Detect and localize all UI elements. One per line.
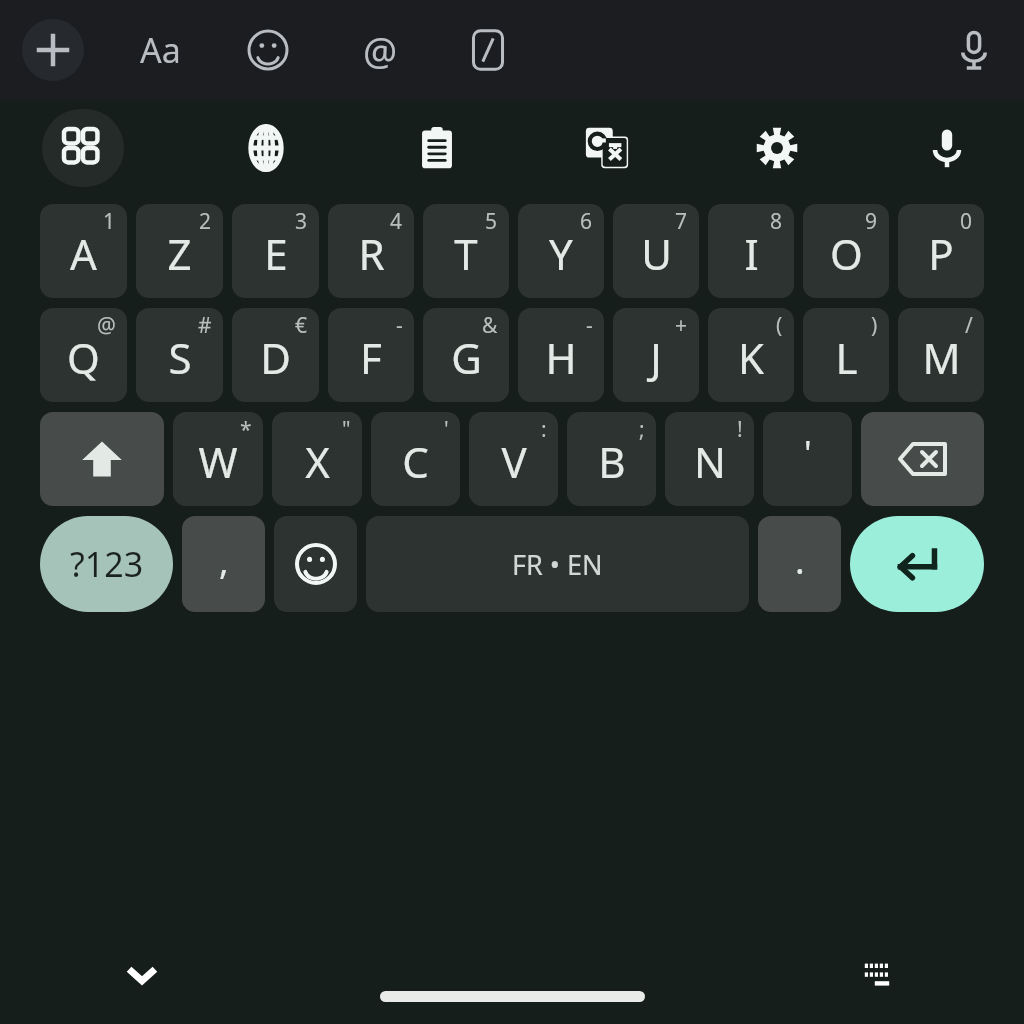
button[interactable]: Voice input: [946, 22, 1002, 78]
staticText: ?123: [70, 541, 144, 587]
button[interactable]: FR • EN: [366, 516, 749, 612]
button[interactable]: Enter: [850, 516, 984, 612]
staticText: 7: [675, 207, 688, 236]
staticText: @: [363, 24, 398, 76]
button[interactable]: Text formatting: [132, 22, 188, 78]
staticText: F: [360, 329, 382, 386]
staticText: Y: [549, 225, 573, 282]
button[interactable]: N: [665, 412, 754, 506]
staticText: €: [295, 311, 308, 340]
button[interactable]: M: [898, 308, 984, 402]
staticText: -: [586, 311, 593, 340]
button[interactable]: Translate: [578, 119, 636, 177]
staticText: 6: [580, 207, 593, 236]
button[interactable]: H: [518, 308, 604, 402]
button[interactable]: Voice typing: [918, 119, 976, 177]
button[interactable]: G: [423, 308, 509, 402]
staticText: T: [454, 225, 478, 282]
staticText: A: [70, 225, 97, 282]
staticText: X: [305, 433, 330, 490]
button[interactable]: R: [328, 204, 414, 298]
staticText: V: [501, 433, 527, 490]
staticText: 4: [390, 207, 403, 236]
staticText: P: [928, 225, 954, 282]
button[interactable]: Slash command: [460, 22, 516, 78]
button[interactable]: Emoji: [274, 516, 357, 612]
button[interactable]: Q: [40, 308, 127, 402]
staticText: .: [795, 536, 805, 585]
staticText: ': [444, 415, 449, 444]
staticText: B: [598, 433, 626, 490]
staticText: 3: [295, 207, 308, 236]
staticText: *: [240, 415, 252, 444]
button[interactable]: P: [898, 204, 984, 298]
button[interactable]: Switch keyboard: [850, 942, 914, 1006]
staticText: FR • EN: [512, 546, 603, 583]
staticText: N: [694, 433, 726, 490]
staticText: C: [402, 433, 429, 490]
staticText: 0: [960, 207, 973, 236]
staticText: 5: [485, 207, 498, 236]
staticText: U: [641, 225, 672, 282]
staticText: !: [737, 415, 743, 444]
staticText: J: [650, 329, 662, 386]
staticText: (: [776, 311, 783, 340]
button[interactable]: Toolbox: [42, 109, 124, 187]
staticText: #: [198, 311, 212, 340]
button[interactable]: Z: [136, 204, 223, 298]
button[interactable]: Settings: [748, 119, 806, 177]
button[interactable]: F: [328, 308, 414, 402]
button[interactable]: C: [371, 412, 460, 506]
button[interactable]: .: [758, 516, 841, 612]
button[interactable]: A: [40, 204, 127, 298]
staticText: 9: [865, 207, 878, 236]
staticText: M: [922, 329, 961, 386]
button[interactable]: J: [613, 308, 699, 402]
button[interactable]: Mention: [352, 22, 408, 78]
staticText: -: [396, 311, 403, 340]
button[interactable]: V: [469, 412, 558, 506]
button[interactable]: Add: [22, 19, 84, 81]
button[interactable]: ,: [182, 516, 265, 612]
button[interactable]: Emoji: [240, 22, 296, 78]
staticText: D: [260, 329, 291, 386]
button[interactable]: Clipboard: [408, 119, 466, 177]
button[interactable]: K: [708, 308, 794, 402]
staticText: G: [451, 329, 482, 386]
button[interactable]: U: [613, 204, 699, 298]
button[interactable]: Hide keyboard: [110, 942, 174, 1006]
button[interactable]: Shift: [40, 412, 164, 506]
button[interactable]: L: [803, 308, 889, 402]
staticText: Q: [67, 329, 100, 386]
button[interactable]: I: [708, 204, 794, 298]
staticText: 1: [103, 207, 116, 236]
staticText: @: [97, 311, 116, 340]
staticText: S: [168, 329, 192, 386]
button[interactable]: S: [136, 308, 223, 402]
staticText: L: [835, 329, 858, 386]
staticText: O: [830, 225, 863, 282]
button[interactable]: T: [423, 204, 509, 298]
staticText: I: [744, 225, 759, 282]
staticText: R: [358, 225, 385, 282]
button[interactable]: ?123: [40, 516, 173, 612]
staticText: ': [804, 430, 812, 476]
button[interactable]: B: [567, 412, 656, 506]
staticText: +: [675, 311, 688, 340]
button[interactable]: E: [232, 204, 319, 298]
staticText: &: [482, 311, 498, 340]
staticText: /: [965, 311, 973, 340]
staticText: Aa: [140, 27, 181, 73]
button[interactable]: Languages: [237, 119, 295, 177]
staticText: ): [871, 311, 878, 340]
button[interactable]: W: [173, 412, 263, 506]
staticText: :: [541, 415, 547, 444]
button[interactable]: O: [803, 204, 889, 298]
button[interactable]: X: [272, 412, 362, 506]
button[interactable]: D: [232, 308, 319, 402]
button[interactable]: Backspace: [861, 412, 984, 506]
button[interactable]: Y: [518, 204, 604, 298]
staticText: 8: [770, 207, 783, 236]
staticText: E: [264, 225, 288, 282]
button[interactable]: ': [763, 412, 852, 506]
